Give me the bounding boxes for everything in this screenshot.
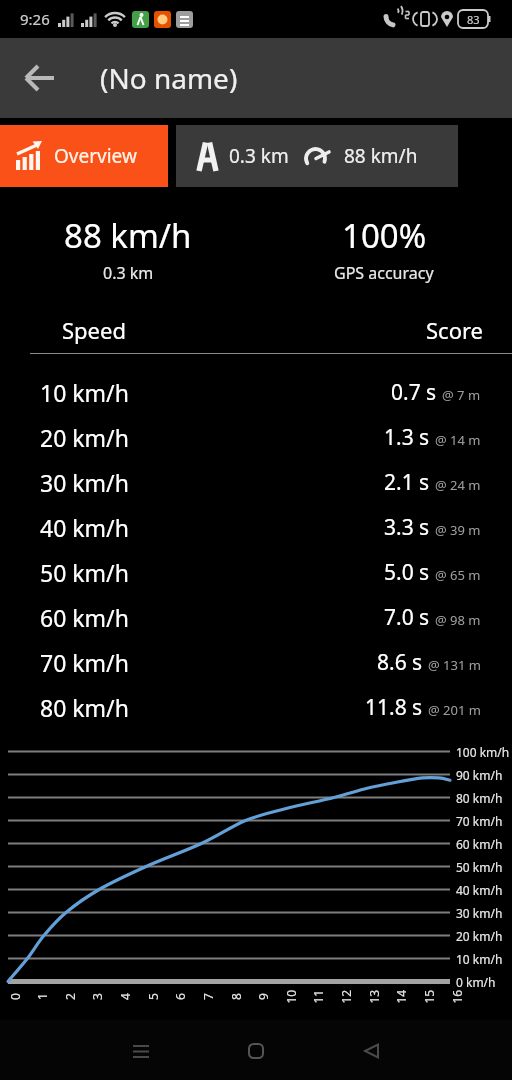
button[interactable]: 20 km/h: [40, 415, 481, 460]
staticText: 83: [467, 12, 480, 27]
button[interactable]: 40 km/h: [40, 505, 481, 550]
staticText: 70 km/h: [40, 647, 129, 678]
staticText: 40 km/h: [40, 512, 129, 543]
staticText: 3.3 s: [384, 513, 430, 542]
staticText: 0.3 km: [103, 262, 154, 284]
staticText: 8.6 s: [377, 648, 423, 677]
staticText: 7.0 s: [384, 603, 430, 632]
button[interactable]: [228, 1032, 284, 1070]
staticText: @ 14 m: [435, 431, 481, 449]
staticText: 80 km/h: [40, 692, 129, 723]
staticText: (No name): [100, 59, 238, 97]
staticText: @ 39 m: [435, 521, 481, 539]
button[interactable]: [0, 38, 80, 118]
staticText: 0.3 km: [229, 143, 289, 169]
button[interactable]: Overview: [0, 125, 168, 187]
staticText: Overview: [54, 143, 137, 169]
button[interactable]: 80 km/h: [40, 685, 481, 730]
staticText: 20 km/h: [40, 422, 129, 453]
button[interactable]: 50 km/h: [40, 550, 481, 595]
button[interactable]: [343, 1032, 399, 1070]
staticText: 60 km/h: [40, 602, 129, 633]
staticText: 100%: [342, 213, 427, 258]
staticText: GPS accuracy: [334, 262, 434, 284]
staticText: @ 201 m: [428, 701, 481, 719]
staticText: 2.1 s: [384, 468, 430, 497]
staticText: 9:26: [20, 9, 50, 29]
button[interactable]: [113, 1032, 169, 1070]
staticText: @ 98 m: [435, 611, 481, 629]
staticText: 88 km/h: [344, 143, 418, 169]
staticText: 1.3 s: [384, 423, 430, 452]
staticText: 0.7 s: [391, 378, 437, 407]
staticText: @ 131 m: [428, 656, 481, 674]
staticText: 10 km/h: [40, 377, 129, 408]
staticText: Speed: [62, 315, 126, 345]
staticText: 5.0 s: [384, 558, 430, 587]
button[interactable]: 60 km/h: [40, 595, 481, 640]
staticText: 11.8 s: [365, 693, 423, 722]
staticText: 50 km/h: [40, 557, 129, 588]
staticText: @ 24 m: [435, 476, 481, 494]
button[interactable]: 10 km/h: [40, 370, 481, 415]
staticText: 30 km/h: [40, 467, 129, 498]
staticText: Score: [426, 315, 484, 345]
staticText: @ 7 m: [442, 386, 481, 404]
button[interactable]: 30 km/h: [40, 460, 481, 505]
staticText: 88 km/h: [64, 213, 192, 258]
button[interactable]: 70 km/h: [40, 640, 481, 685]
staticText: @ 65 m: [435, 566, 481, 584]
button[interactable]: 0.3 km: [176, 125, 458, 187]
